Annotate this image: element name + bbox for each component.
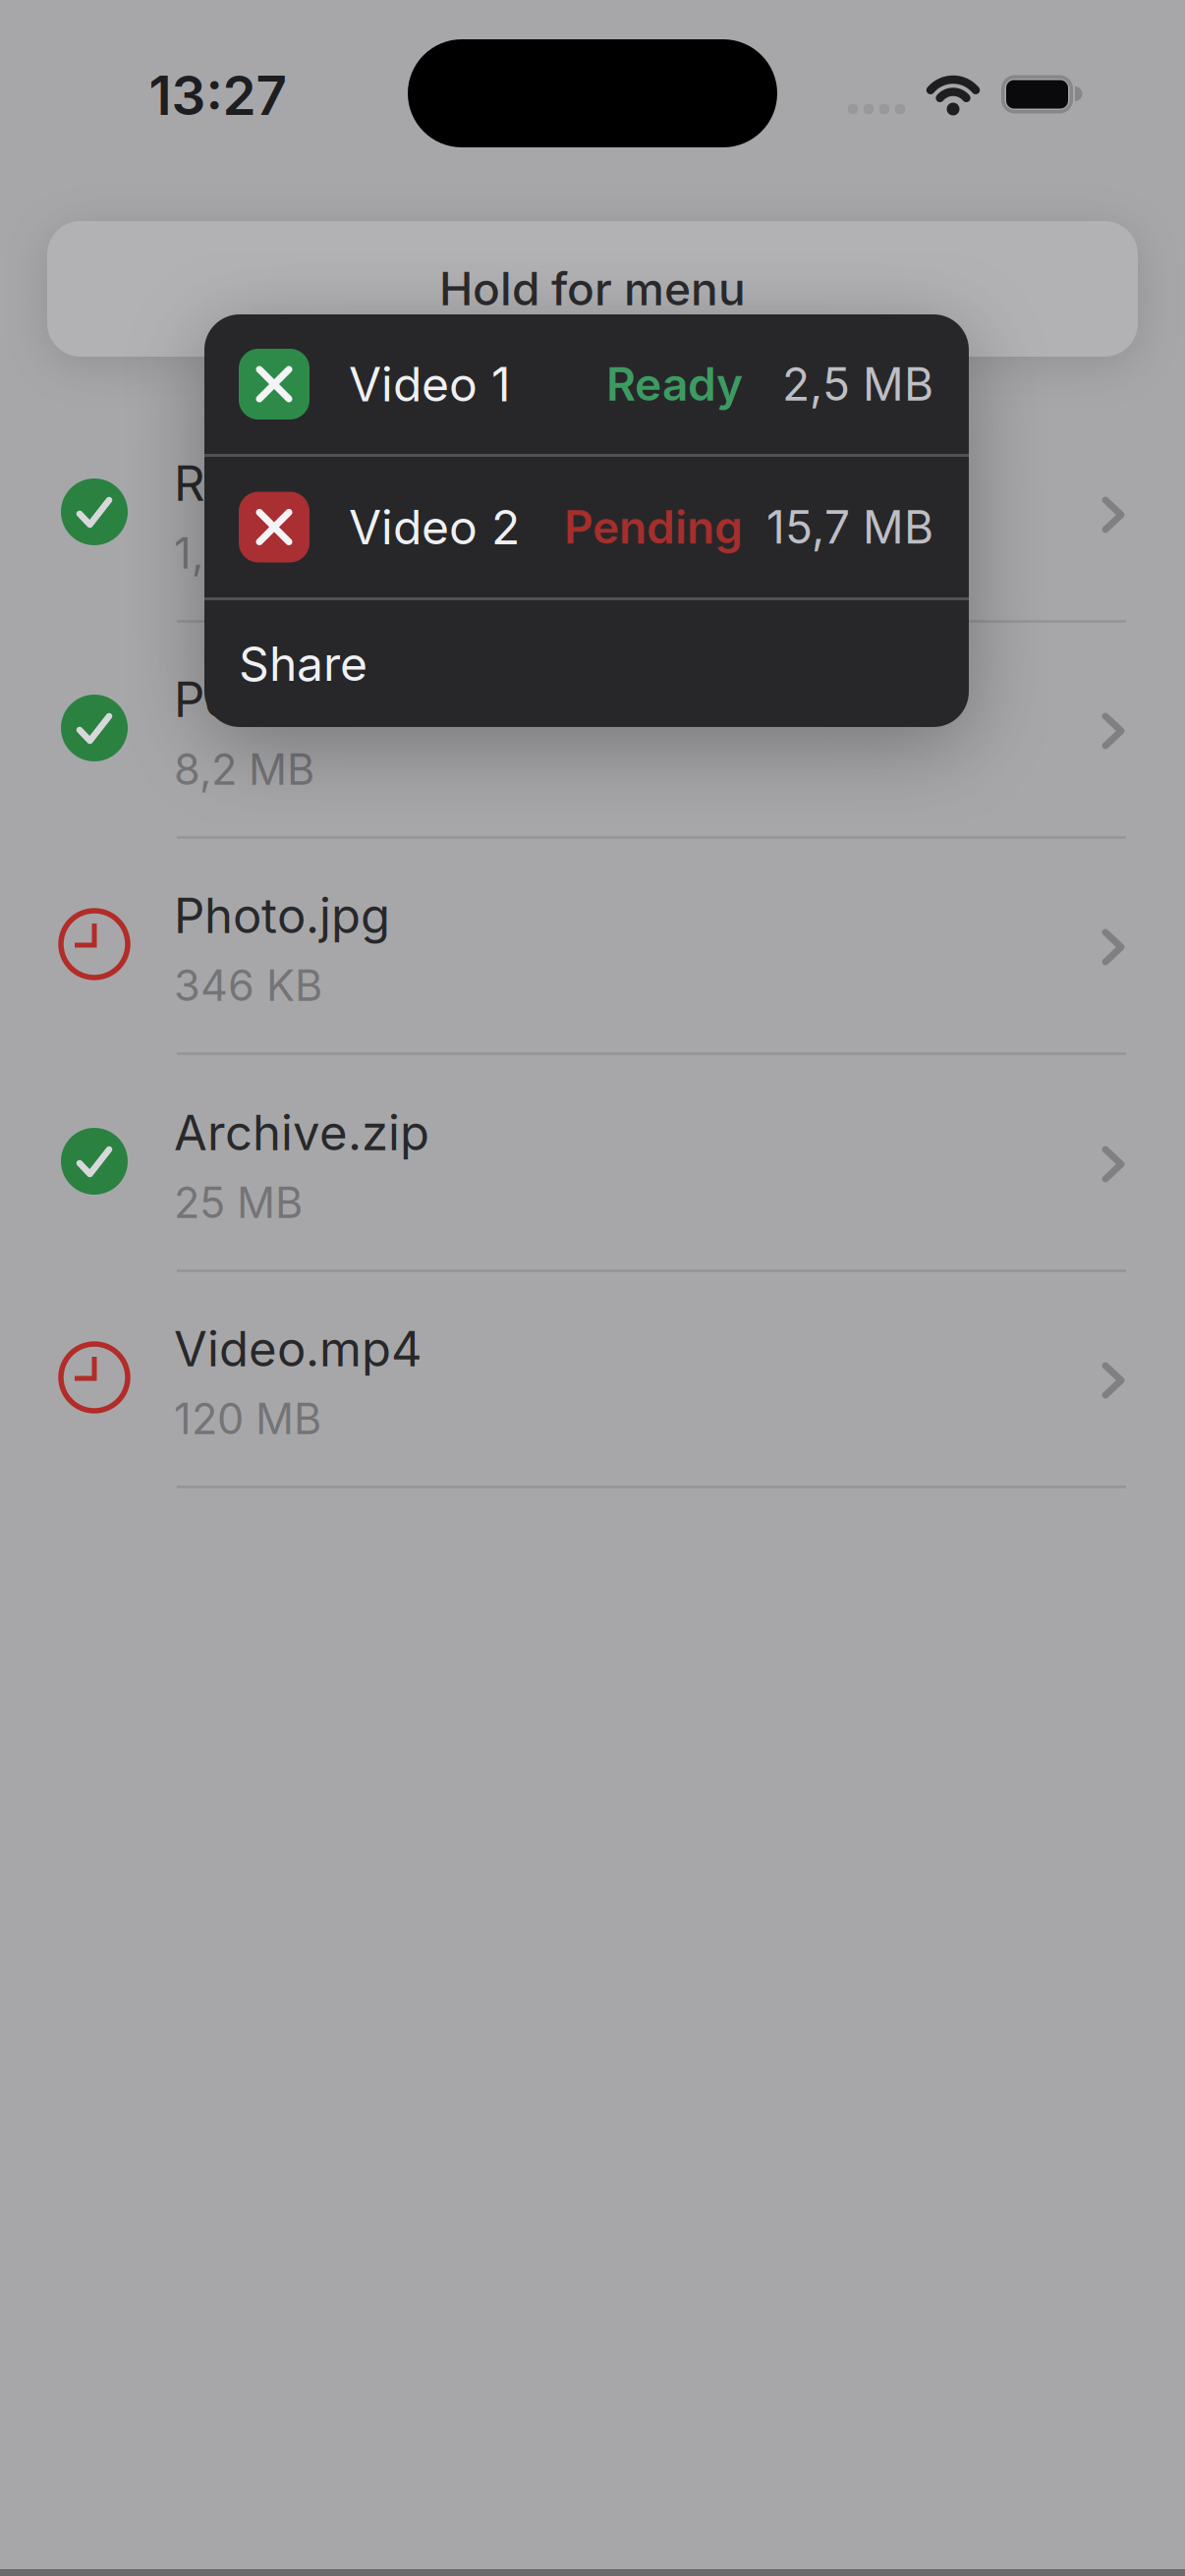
button[interactable]: Hold for menu <box>47 221 1138 357</box>
staticText: 15,7 MB <box>766 500 933 554</box>
staticText: Video 1 <box>349 356 511 412</box>
button[interactable]: Podcast.mp3 <box>0 619 1185 835</box>
button[interactable]: Share <box>204 600 966 727</box>
staticText: Ready <box>606 357 743 411</box>
staticText: Report.pdf <box>174 455 416 512</box>
staticText: Video.mp4 <box>174 1321 423 1377</box>
staticText: Hold for menu <box>439 262 746 316</box>
staticText: 8,2 MB <box>174 744 314 794</box>
staticText: 346 KB <box>174 960 322 1010</box>
button[interactable]: Video.mp4 <box>0 1268 1185 1484</box>
staticText: Photo.jpg <box>174 887 390 944</box>
staticText: Archive.zip <box>174 1104 429 1161</box>
button[interactable]: Video 1 <box>204 314 966 454</box>
button[interactable]: Video 2 <box>204 457 966 597</box>
staticText: Pending <box>564 500 743 554</box>
staticText: 25 MB <box>174 1177 303 1228</box>
button[interactable]: Report.pdf <box>0 403 1185 619</box>
staticText: 2,5 MB <box>782 357 933 411</box>
button[interactable]: Photo.jpg <box>0 835 1185 1051</box>
staticText: 120 MB <box>174 1394 321 1444</box>
staticText: Share <box>239 636 367 691</box>
staticText: Video 2 <box>349 499 520 555</box>
staticText: 13:27 <box>149 64 287 127</box>
staticText: Podcast.mp3 <box>174 671 473 728</box>
button[interactable]: Archive.zip <box>0 1052 1185 1268</box>
staticText: 1,2 MB <box>174 528 307 578</box>
